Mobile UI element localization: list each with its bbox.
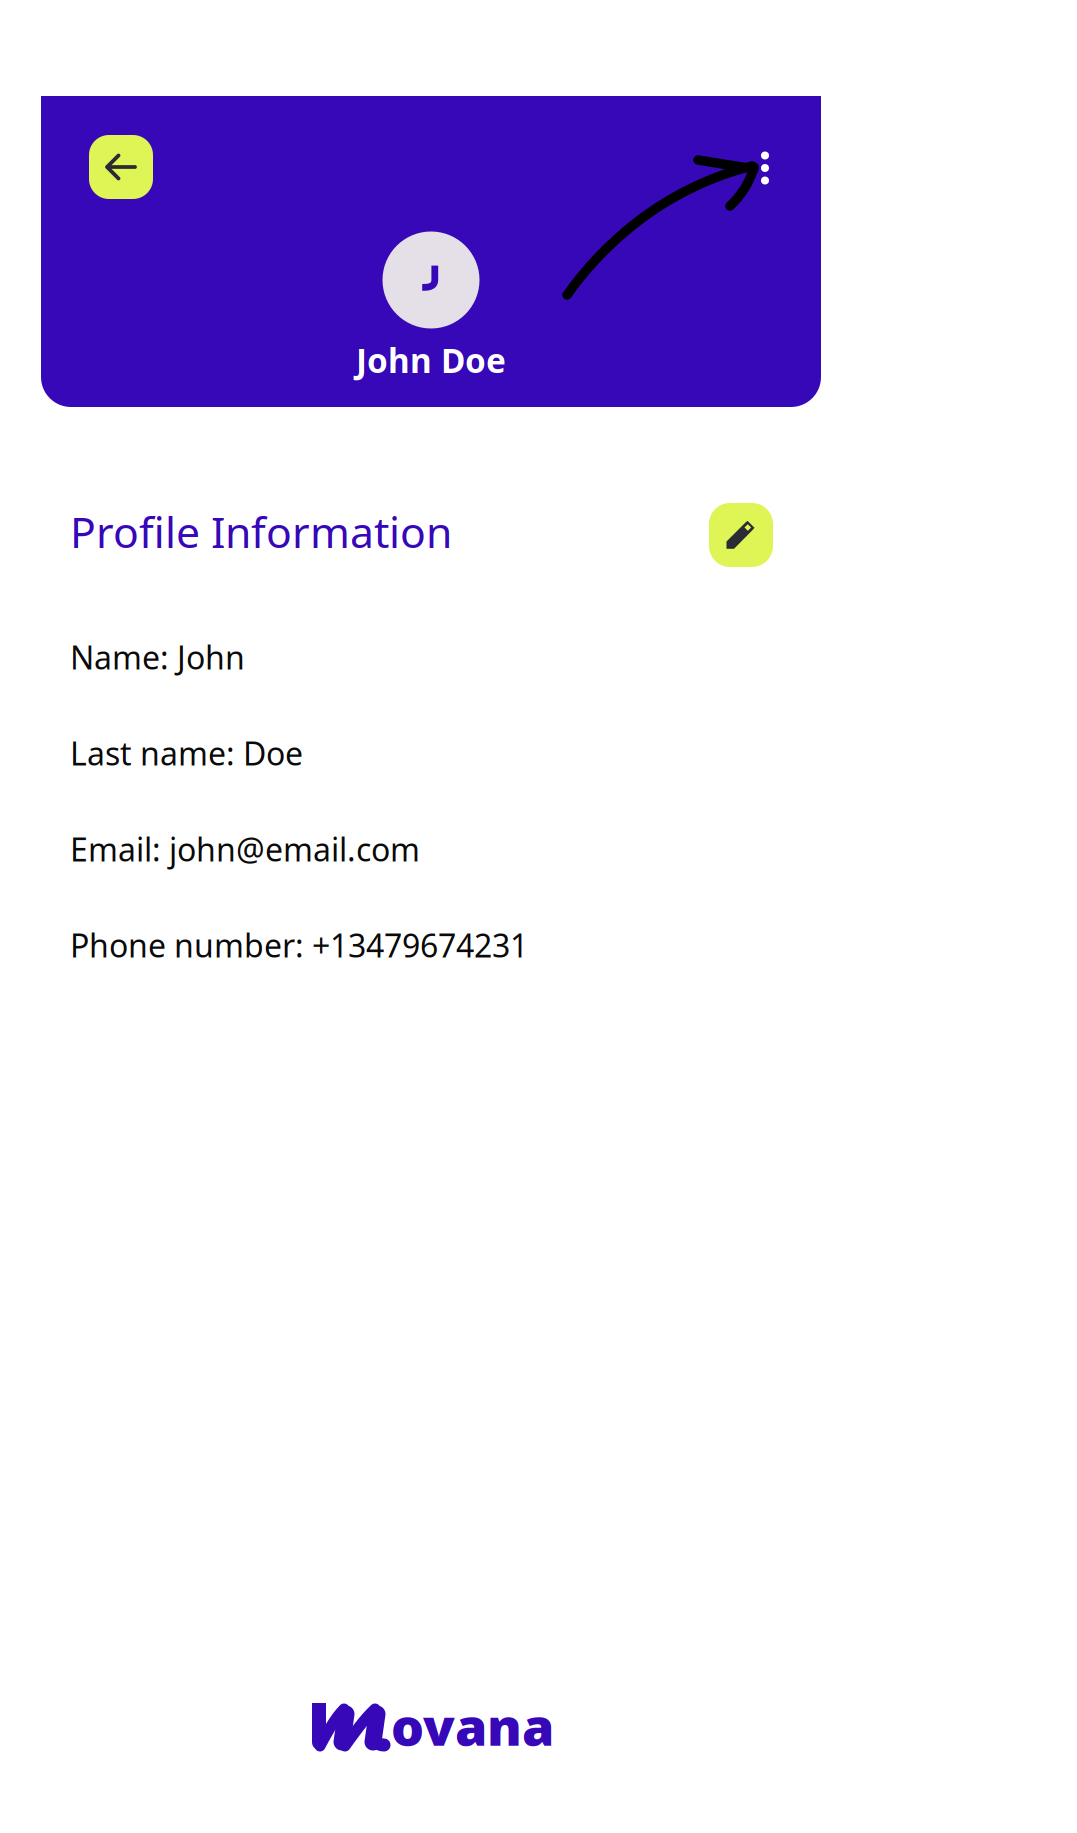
staticText: Profile Information	[70, 503, 452, 560]
staticText: Email: john@email.com	[70, 828, 420, 870]
button[interactable]: Edit profile	[709, 503, 773, 567]
staticText: Phone number: +13479674231	[70, 924, 528, 966]
button[interactable]: Back	[89, 135, 153, 199]
staticText: John Doe	[356, 338, 506, 382]
staticText: ovana	[391, 1691, 554, 1760]
button[interactable]: More options	[743, 140, 787, 196]
staticText: Name: John	[70, 636, 245, 678]
staticText: Last name: Doe	[70, 732, 303, 774]
